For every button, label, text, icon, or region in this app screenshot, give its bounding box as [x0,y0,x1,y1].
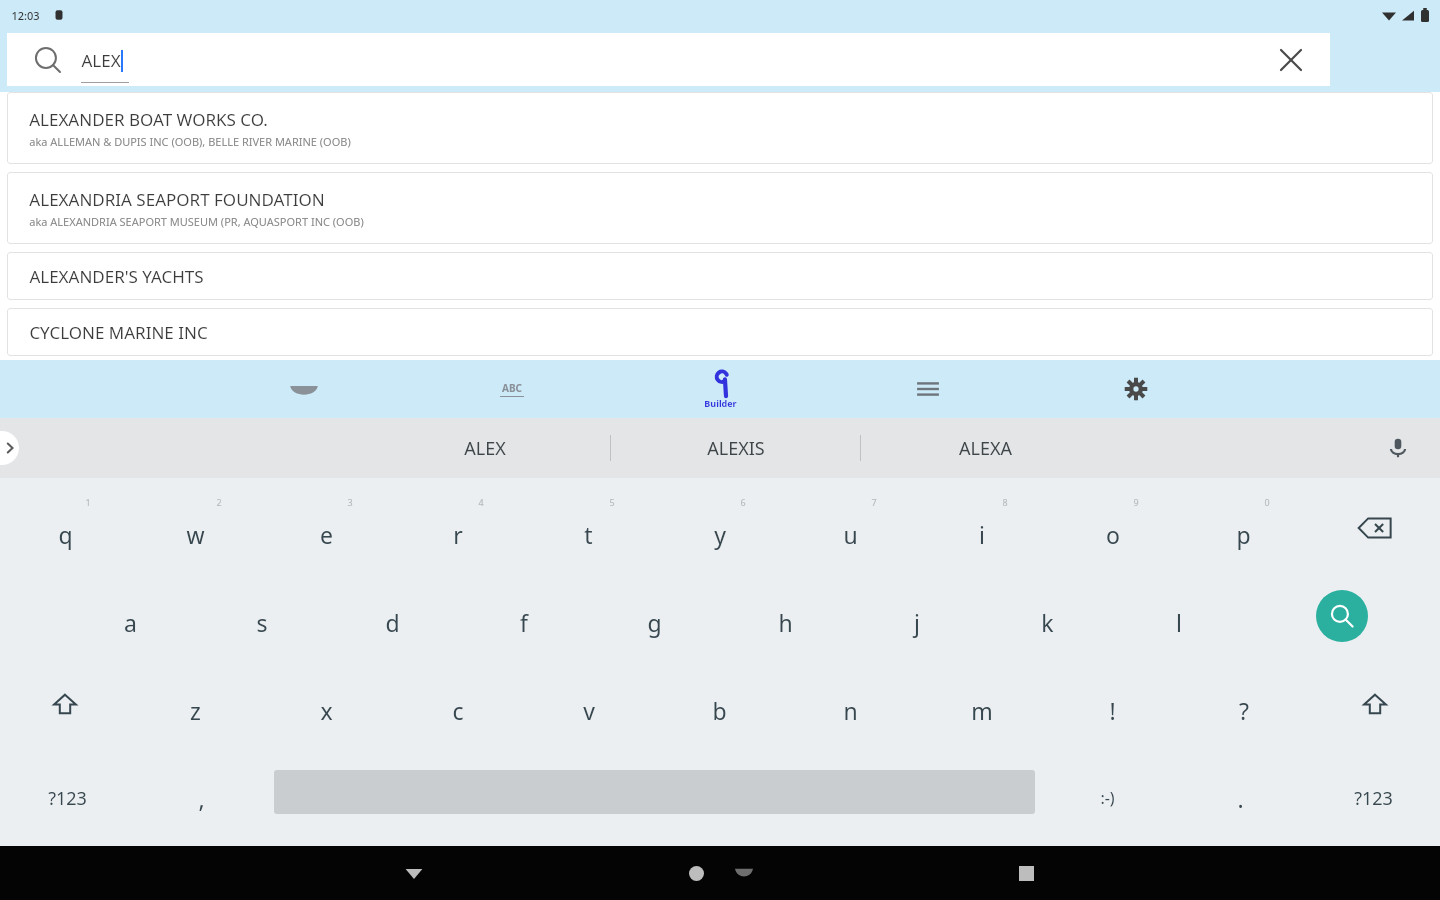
staticText: u [843,519,858,550]
button[interactable]: . [1174,748,1307,836]
button[interactable]: x [261,660,392,748]
staticText: k [1041,607,1054,638]
button[interactable]: ALEXA [861,418,1110,478]
button[interactable]: f [458,572,589,660]
button[interactable]: Back [390,849,438,897]
staticText: ! [1109,695,1116,726]
staticText: o [1106,519,1120,550]
staticText: z [190,695,201,726]
button[interactable]: CYCLONE MARINE INC [7,308,1433,356]
button[interactable]: Clear search [1268,37,1314,83]
staticText: 5 [609,496,615,508]
staticText: ?123 [1354,786,1393,811]
button[interactable]: Boat [262,360,346,418]
button[interactable]: l [1113,572,1244,660]
button[interactable]: ALEXANDRIA SEAPORT FOUNDATION [7,172,1433,244]
button[interactable]: a [65,572,196,660]
button[interactable]: 9 [1047,484,1178,572]
button[interactable]: Builder [678,360,762,418]
button[interactable]: 3 [261,484,392,572]
button[interactable]: c [392,660,523,748]
staticText: ALEX [464,436,506,461]
staticText: 6 [740,496,746,508]
staticText: aka ALEXANDRIA SEAPORT MUSEUM (PR, AQUAS… [29,214,364,229]
button[interactable]: ABC [470,360,554,418]
staticText: ALEXANDRIA SEAPORT FOUNDATION [29,188,325,211]
button[interactable]: z [130,660,261,748]
staticText: t [584,519,593,550]
staticText: ALEX [81,49,121,72]
staticText: j [914,607,920,638]
button[interactable]: m [916,660,1047,748]
staticText: m [971,695,993,726]
staticText: v [583,695,595,726]
staticText: h [778,607,793,638]
button[interactable]: j [851,572,982,660]
button[interactable]: d [327,572,458,660]
button[interactable]: ALEXANDER BOAT WORKS CO. [7,92,1433,164]
staticText: b [712,695,727,726]
button[interactable]: 1 [0,484,130,572]
button[interactable]: 2 [130,484,261,572]
button[interactable]: ALEXIS [611,418,860,478]
button[interactable] [268,748,1041,836]
button[interactable]: Expand suggestions [0,431,19,465]
staticText: y [714,519,726,550]
staticText: i [979,519,985,550]
button[interactable]: ALEX [360,418,610,478]
staticText: 12:03 [11,8,40,23]
staticText: , [198,783,205,814]
button[interactable]: 8 [916,484,1047,572]
button[interactable]: b [654,660,785,748]
staticText: 0 [1264,496,1270,508]
staticText: . [1237,783,1244,814]
button[interactable]: 7 [785,484,916,572]
button[interactable]: ?123 [1307,748,1440,836]
staticText: CYCLONE MARINE INC [29,321,208,344]
button[interactable]: Shift [0,660,130,748]
button[interactable]: k [982,572,1113,660]
staticText: ? [1239,695,1249,726]
staticText: p [1236,519,1251,550]
staticText: ALEXA [959,436,1012,461]
button[interactable]: ?123 [0,748,134,836]
staticText: a [124,607,137,638]
staticText: q [58,519,73,550]
button[interactable]: g [589,572,720,660]
button[interactable]: 6 [654,484,785,572]
button[interactable]: s [196,572,327,660]
staticText: 8 [1002,496,1008,508]
staticText: 4 [478,496,484,508]
button[interactable]: Recent apps [1002,849,1050,897]
button[interactable]: Backspace [1309,484,1440,572]
button[interactable]: Menu [886,360,970,418]
staticText: ?123 [48,786,87,811]
button[interactable]: Hide keyboard [720,849,768,897]
button[interactable]: ALEX [7,33,1330,86]
staticText: ALEXIS [707,436,765,461]
staticText: 1 [85,496,91,508]
staticText: s [256,607,268,638]
button[interactable]: Settings [1094,360,1178,418]
button[interactable]: 5 [523,484,654,572]
staticText: ABC [502,381,522,395]
button[interactable]: 0 [1178,484,1309,572]
staticText: 9 [1133,496,1139,508]
button[interactable]: v [523,660,654,748]
button[interactable]: :-) [1041,748,1174,836]
button[interactable]: ! [1047,660,1178,748]
button[interactable]: Shift [1309,660,1440,748]
button[interactable]: Search [1244,572,1440,660]
staticText: e [320,519,333,550]
button[interactable]: , [134,748,268,836]
button[interactable]: h [720,572,851,660]
staticText: 7 [871,496,877,508]
button[interactable]: ? [1178,660,1309,748]
button[interactable]: Voice input [1376,426,1420,470]
button[interactable]: ALEXANDER'S YACHTS [7,252,1433,300]
staticText: ALEXANDER'S YACHTS [29,265,204,288]
button[interactable]: 4 [392,484,523,572]
staticText: n [843,695,858,726]
button[interactable]: n [785,660,916,748]
button[interactable]: Home [672,849,720,897]
